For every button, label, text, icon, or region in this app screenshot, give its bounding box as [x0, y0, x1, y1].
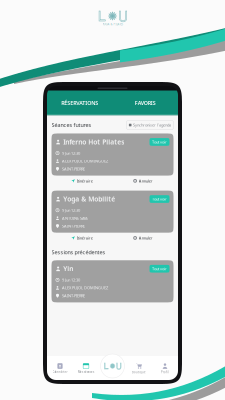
staticText: Tout voir [152, 266, 167, 271]
staticText: Boutique [132, 370, 146, 374]
staticText: Mes séances [78, 370, 94, 374]
staticText: RÉSERVATIONS [61, 99, 98, 107]
button[interactable]: Annuler [112, 233, 173, 243]
staticText: 9 Jun 12:30 [62, 150, 80, 156]
button[interactable]: Annuler [112, 176, 173, 186]
staticText: SAINT-PIERRE [62, 166, 85, 172]
button[interactable]: FAVORIS [112, 90, 178, 116]
staticText: Sessions précédentes [51, 249, 105, 256]
staticText: Inferno Hot Pilates [63, 137, 124, 146]
staticText: Annuler [139, 235, 153, 241]
staticText: ALEX PUJOL DOMINGUEZ [62, 158, 108, 164]
staticText: Itinéraire [77, 235, 93, 241]
button[interactable]: Profil [152, 363, 178, 374]
staticText: FAVORIS [135, 99, 156, 107]
button[interactable]: Calendrier [47, 363, 73, 374]
staticText: Itinéraire [77, 178, 93, 183]
staticText: Profil [161, 370, 169, 374]
staticText: ALEX PUJOL DOMINGUEZ [62, 285, 108, 290]
staticText: Tout voir [152, 196, 167, 202]
staticText: Synchroniser l'agenda [133, 122, 171, 128]
staticText: Annuler [139, 178, 153, 183]
button[interactable]: Itinéraire [51, 233, 112, 243]
button[interactable]: Synchroniser l'agenda [126, 121, 173, 129]
staticText: ANTOINE SAVE [62, 215, 88, 221]
staticText: Yin [63, 264, 73, 273]
staticText: Tout voir [152, 139, 167, 145]
staticText: 9 Jun 12:30 [62, 277, 80, 282]
staticText: SAINT-PIERRE [62, 293, 85, 298]
staticText: SAINT-PIERRE [62, 223, 85, 229]
staticText: 9 Jun 12:30 [62, 208, 80, 213]
button[interactable]: Mes séances [73, 363, 99, 374]
staticText: Yoga & Mobilité [63, 195, 115, 203]
button[interactable]: RÉSERVATIONS [47, 90, 112, 116]
staticText: Calendrier [52, 370, 67, 374]
button[interactable]: Itinéraire [51, 176, 112, 186]
staticText: YOGA & PILATES [102, 22, 122, 26]
staticText: Séances futures [51, 121, 91, 129]
button[interactable]: Boutique [126, 363, 152, 374]
button[interactable]: Accueil [100, 354, 124, 378]
